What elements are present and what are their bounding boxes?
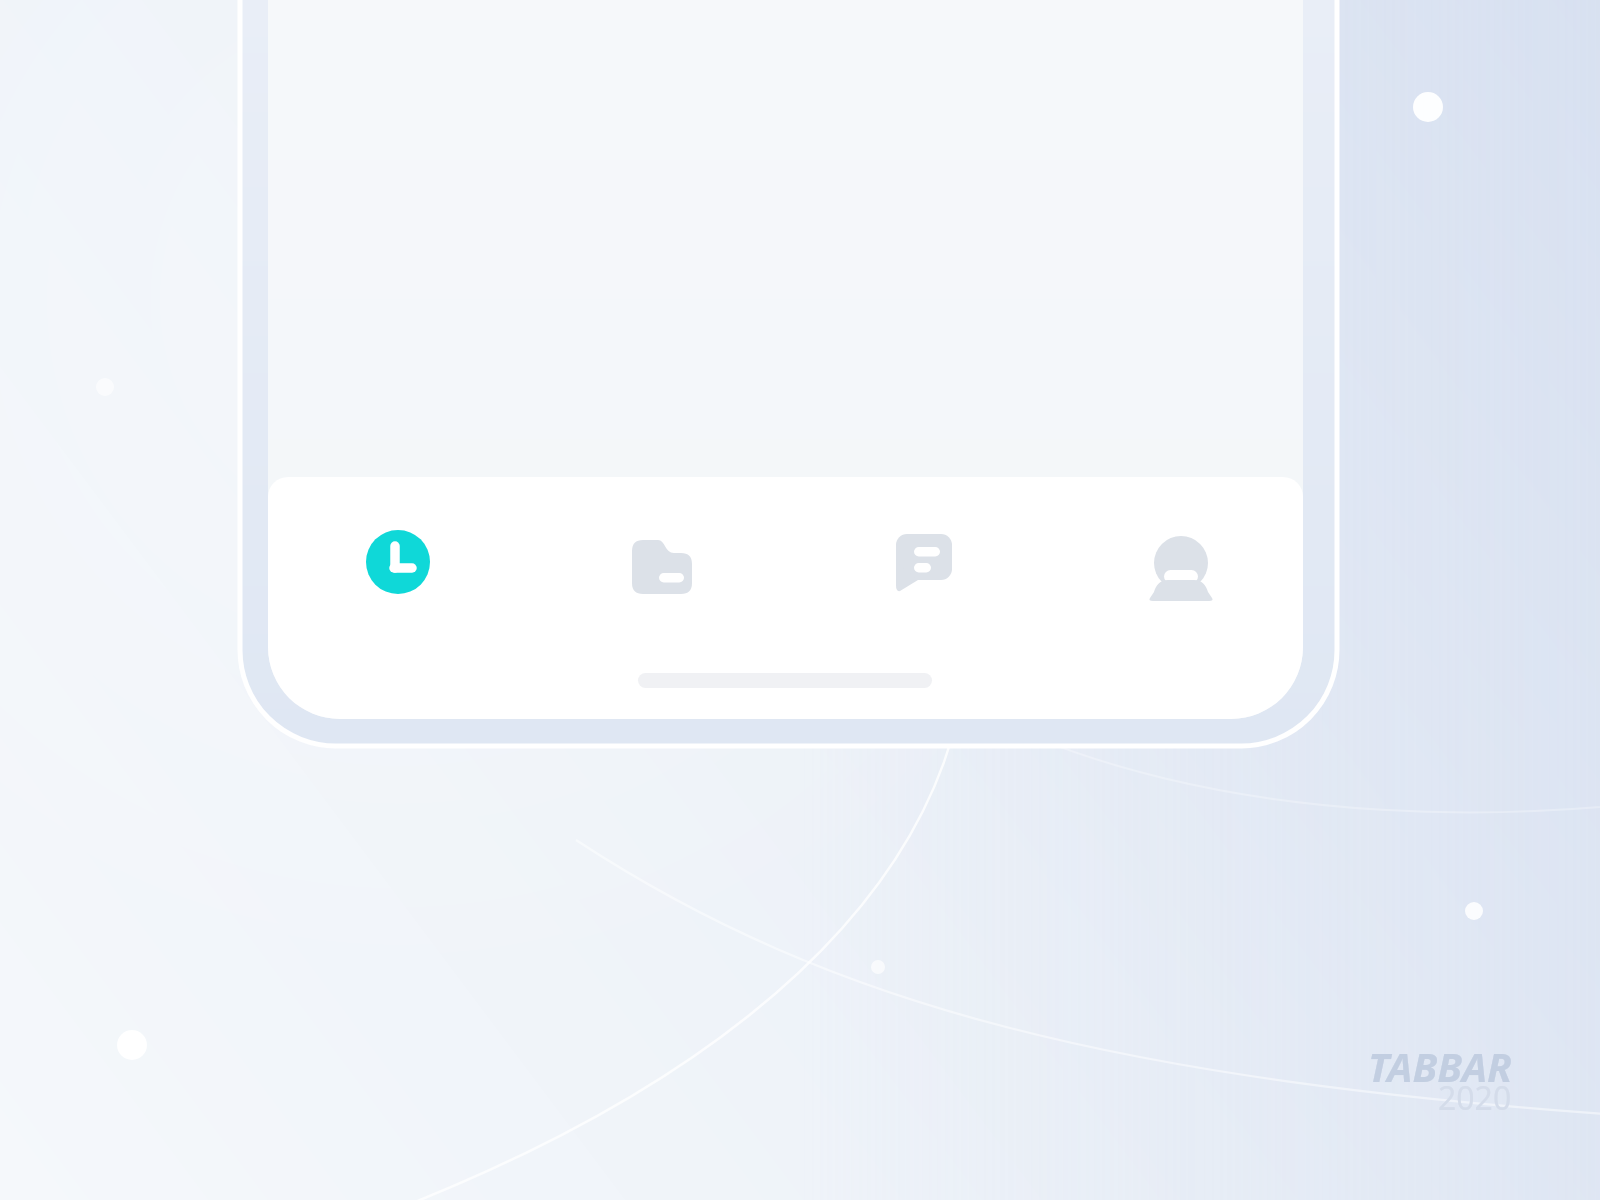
button[interactable]: Recent [352, 516, 444, 608]
button[interactable]: Messages [878, 516, 970, 608]
button[interactable]: Profile [1135, 516, 1227, 608]
button[interactable]: Files [616, 516, 708, 608]
